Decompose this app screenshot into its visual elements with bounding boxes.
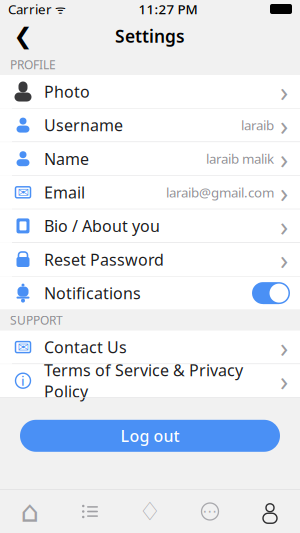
button[interactable]: Profile: [240, 499, 300, 523]
staticText: Photo: [44, 81, 90, 102]
button[interactable]: Home: [0, 499, 60, 523]
staticText: ✉: [17, 339, 28, 355]
button[interactable]: Log out: [20, 420, 280, 452]
button[interactable]: Username: [0, 109, 300, 142]
staticText: ᯤ: [52, 1, 66, 17]
staticText: PROFILE: [10, 56, 56, 72]
staticText: ♢: [138, 497, 161, 526]
staticText: Terms of Service & Privacy Policy: [44, 359, 243, 402]
button[interactable]: Back: [6, 19, 40, 53]
staticText: Carrier: [8, 0, 52, 18]
button[interactable]: Reset Password: [0, 243, 300, 276]
button[interactable]: Messages: [180, 499, 240, 523]
staticText: i: [21, 372, 25, 389]
staticText: Email: [44, 182, 85, 203]
staticText: Contact Us: [44, 336, 127, 358]
staticText: SUPPORT: [10, 312, 63, 328]
button[interactable]: Photo: [0, 75, 300, 108]
staticText: ⋯: [202, 503, 217, 520]
staticText: Username: [44, 114, 123, 136]
staticText: ›: [280, 242, 288, 277]
button[interactable]: Bio / About you: [0, 209, 300, 242]
staticText: ›: [280, 74, 288, 109]
button[interactable]: Notifications: [0, 277, 300, 310]
staticText: 11:27 PM: [138, 0, 197, 18]
staticText: laraib malik: [206, 150, 274, 167]
staticText: ❮: [13, 23, 32, 49]
button[interactable]: i: [0, 364, 300, 397]
staticText: Log out: [120, 425, 179, 446]
staticText: Name: [44, 148, 89, 169]
staticText: Settings: [115, 24, 185, 47]
staticText: ›: [280, 175, 288, 210]
staticText: ✉: [17, 185, 28, 200]
staticText: ›: [280, 141, 288, 176]
staticText: ›: [280, 208, 288, 244]
staticText: ›: [280, 329, 288, 365]
button[interactable]: ✉: [0, 176, 300, 209]
staticText: ⌂: [20, 495, 39, 528]
staticText: laraib: [241, 116, 274, 134]
staticText: ›: [280, 363, 288, 398]
button[interactable]: ✉: [0, 331, 300, 364]
staticText: ›: [280, 107, 288, 143]
button[interactable]: Name: [0, 142, 300, 175]
button[interactable]: Feed: [60, 499, 120, 523]
staticText: Notifications: [44, 282, 141, 304]
staticText: Reset Password: [44, 249, 164, 270]
button[interactable]: Notifications: [120, 499, 180, 523]
staticText: Bio / About you: [44, 215, 160, 236]
staticText: laraib@gmail.com: [166, 183, 274, 201]
